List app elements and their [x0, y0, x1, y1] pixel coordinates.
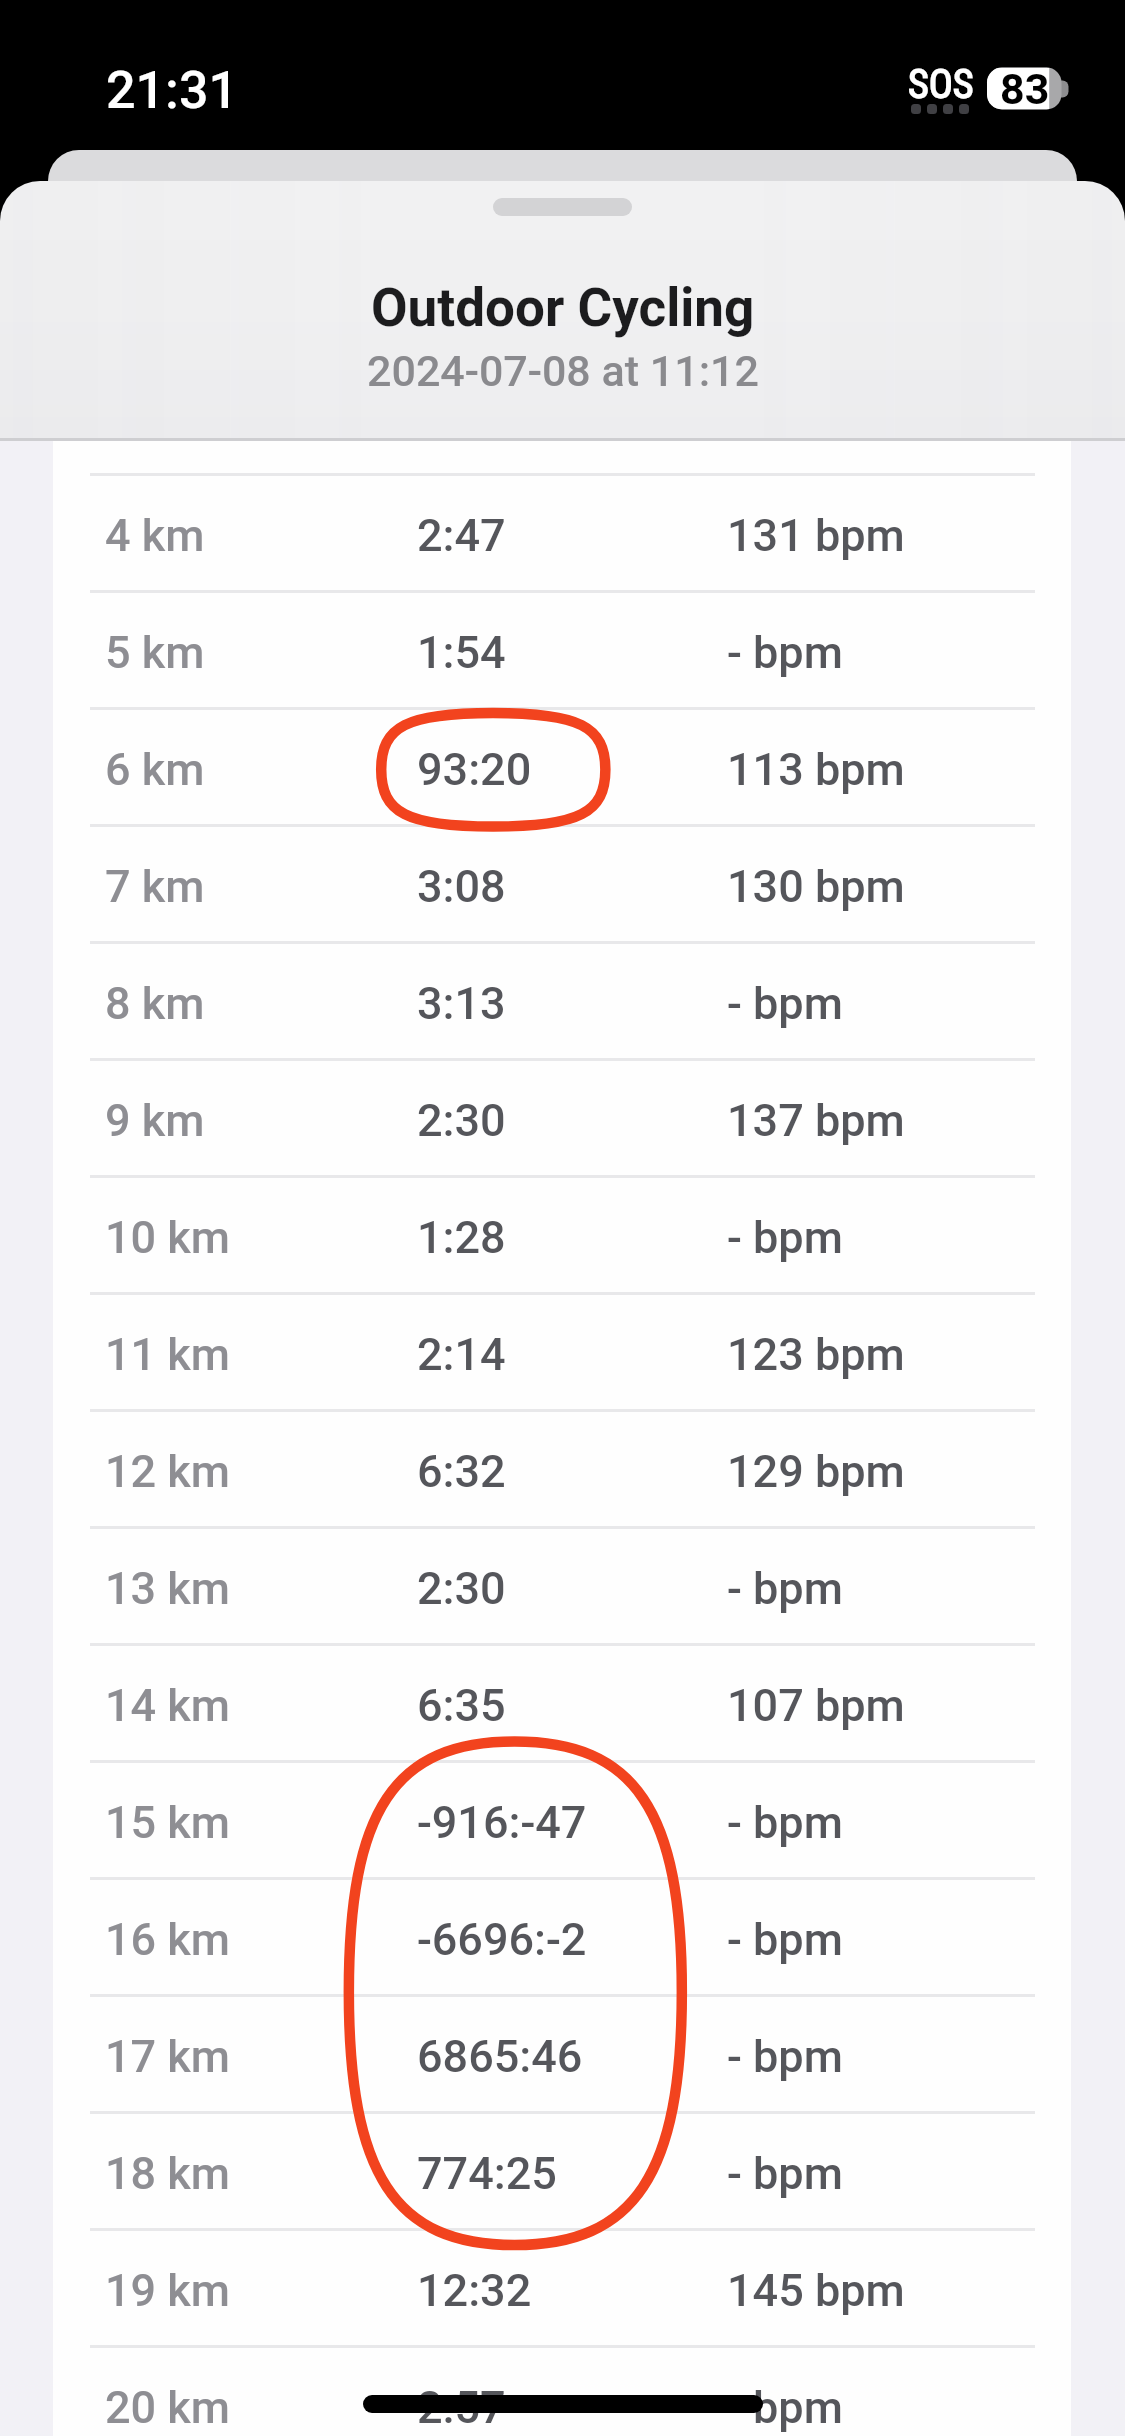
button[interactable]: 17 km — [0, 1997, 1125, 2111]
staticText: 7 km — [105, 860, 205, 913]
staticText: - bpm — [727, 2030, 843, 2083]
staticText: - bpm — [727, 2381, 843, 2434]
staticText: SOS — [908, 61, 974, 108]
staticText: 6865:46 — [417, 2030, 583, 2083]
staticText: - bpm — [727, 1211, 843, 1264]
staticText: 5 km — [105, 626, 205, 679]
button[interactable]: 12 km — [0, 1412, 1125, 1526]
staticText: 107 bpm — [727, 1679, 905, 1732]
button[interactable]: 6 km — [0, 710, 1125, 824]
staticText: 2:30 — [417, 1562, 506, 1615]
staticText: 12 km — [105, 1445, 231, 1498]
other: Battery 83 percent — [0, 0, 1125, 2436]
button[interactable]: 10 km — [0, 1178, 1125, 1292]
staticText: 774:25 — [417, 2147, 557, 2200]
staticText: 145 bpm — [727, 2264, 905, 2317]
button[interactable]: 5 km — [0, 593, 1125, 707]
button[interactable]: 20 km — [0, 2348, 1125, 2436]
staticText: Outdoor Cycling — [371, 277, 755, 339]
button[interactable]: 8 km — [0, 944, 1125, 1058]
staticText: 20 km — [105, 2381, 231, 2434]
staticText: 15 km — [105, 1796, 231, 1849]
staticText: 2:14 — [417, 1328, 506, 1381]
staticText: 21:31 — [106, 60, 239, 121]
staticText: 1:28 — [417, 1211, 506, 1264]
staticText: 129 bpm — [727, 1445, 905, 1498]
staticText: 3:13 — [417, 977, 506, 1030]
staticText: -916:-47 — [417, 1796, 587, 1849]
button[interactable]: 9 km — [0, 1061, 1125, 1175]
button[interactable]: 4 km — [0, 476, 1125, 590]
staticText: 8 km — [105, 977, 205, 1030]
button[interactable]: 11 km — [0, 1295, 1125, 1409]
staticText: - bpm — [727, 1796, 843, 1849]
staticText: 17 km — [105, 2030, 231, 2083]
staticText: 1:54 — [417, 626, 506, 679]
staticText: 10 km — [105, 1211, 231, 1264]
staticText: 19 km — [105, 2264, 231, 2317]
staticText: 11 km — [105, 1328, 231, 1381]
staticText: 9 km — [105, 1094, 205, 1147]
staticText: 93:20 — [417, 743, 532, 796]
staticText: 4 km — [105, 509, 205, 562]
staticText: 13 km — [105, 1562, 231, 1615]
staticText: 2:57 — [417, 2381, 506, 2434]
staticText: 6:35 — [417, 1679, 506, 1732]
staticText: 12:32 — [417, 2264, 532, 2317]
staticText: 2:47 — [417, 509, 506, 562]
button[interactable]: 13 km — [0, 1529, 1125, 1643]
staticText: -6696:-2 — [417, 1913, 587, 1966]
staticText: - bpm — [727, 2147, 843, 2200]
staticText: - bpm — [727, 977, 843, 1030]
staticText: - bpm — [727, 1913, 843, 1966]
staticText: 18 km — [105, 2147, 231, 2200]
staticText: 130 bpm — [727, 860, 905, 913]
staticText: 123 bpm — [727, 1328, 905, 1381]
staticText: 83 — [1000, 64, 1050, 114]
staticText: 2:30 — [417, 1094, 506, 1147]
staticText: 6 km — [105, 743, 205, 796]
button[interactable]: 7 km — [0, 827, 1125, 941]
button[interactable]: 18 km — [0, 2114, 1125, 2228]
staticText: - bpm — [727, 626, 843, 679]
staticText: 6:32 — [417, 1445, 506, 1498]
button[interactable]: 19 km — [0, 2231, 1125, 2345]
staticText: 137 bpm — [727, 1094, 905, 1147]
button[interactable]: 15 km — [0, 1763, 1125, 1877]
staticText: 113 bpm — [727, 743, 905, 796]
staticText: 14 km — [105, 1679, 231, 1732]
button[interactable]: 14 km — [0, 1646, 1125, 1760]
button[interactable]: 16 km — [0, 1880, 1125, 1994]
staticText: 16 km — [105, 1913, 231, 1966]
staticText: 131 bpm — [727, 509, 905, 562]
staticText: 2024-07-08 at 11:12 — [367, 346, 759, 396]
staticText: - bpm — [727, 1562, 843, 1615]
staticText: 3:08 — [417, 860, 506, 913]
